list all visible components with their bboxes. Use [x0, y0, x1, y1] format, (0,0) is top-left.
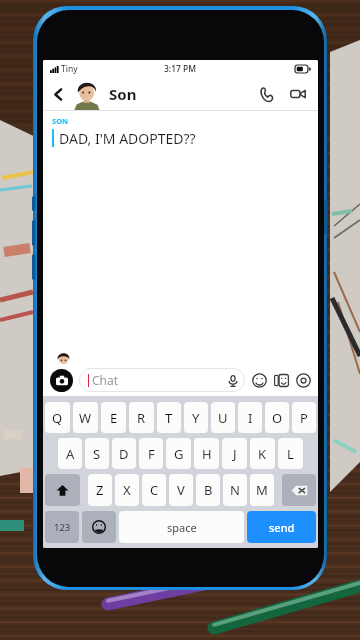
staticText: send	[269, 520, 295, 535]
staticText: SON	[52, 116, 69, 126]
button[interactable]: S	[85, 438, 109, 469]
staticText: U	[218, 409, 228, 427]
button[interactable]: Y	[184, 402, 208, 433]
button[interactable]: C	[142, 474, 166, 506]
button[interactable]: Call	[254, 82, 278, 106]
button[interactable]: Voice message	[224, 372, 241, 389]
staticText: D	[119, 445, 129, 463]
button[interactable]: E	[101, 402, 126, 433]
staticText: Son	[109, 84, 137, 104]
button[interactable]: 123	[45, 511, 79, 543]
staticText: B	[204, 481, 213, 499]
staticText: M	[256, 481, 268, 499]
button[interactable]: W	[73, 402, 98, 433]
staticText: A	[66, 445, 75, 463]
staticText: J	[233, 445, 237, 463]
staticText: L	[287, 445, 294, 463]
button[interactable]: V	[169, 474, 193, 506]
button[interactable]: Backspace	[282, 474, 316, 506]
staticText: S	[93, 445, 101, 463]
staticText: 3:17 PM	[164, 63, 197, 75]
staticText: Chat	[92, 372, 119, 388]
staticText: Z	[96, 481, 104, 499]
staticText: space	[167, 520, 197, 535]
button[interactable]: Back	[48, 84, 68, 104]
button[interactable]: Emoji	[250, 371, 268, 389]
button[interactable]: G	[166, 438, 191, 469]
staticText: K	[258, 445, 267, 463]
staticText: N	[230, 481, 240, 499]
staticText: I	[248, 409, 253, 427]
button[interactable]: L	[278, 438, 303, 469]
button[interactable]: F	[139, 438, 163, 469]
staticText: Tiny	[61, 63, 78, 75]
button[interactable]: Camera	[50, 369, 73, 392]
button[interactable]: Q	[45, 402, 70, 433]
button[interactable]: Chat	[79, 368, 245, 392]
staticText: C	[150, 481, 159, 499]
staticText: O	[272, 409, 283, 427]
button[interactable]: Video call	[286, 82, 310, 106]
staticText: H	[202, 445, 212, 463]
button[interactable]: N	[223, 474, 247, 506]
button[interactable]: P	[292, 402, 316, 433]
button[interactable]: I	[238, 402, 262, 433]
button[interactable]: D	[112, 438, 136, 469]
button[interactable]: K	[250, 438, 275, 469]
staticText: P	[300, 409, 308, 427]
button[interactable]: B	[196, 474, 220, 506]
staticText: V	[177, 481, 185, 499]
button[interactable]: Location	[294, 371, 312, 389]
button[interactable]: A	[58, 438, 82, 469]
staticText: T	[165, 409, 173, 427]
button[interactable]: J	[222, 438, 247, 469]
staticText: W	[79, 409, 92, 427]
staticText: R	[137, 409, 146, 427]
button[interactable]: Stickers	[272, 371, 290, 389]
staticText: G	[174, 445, 184, 463]
button[interactable]: Shift	[45, 474, 80, 506]
button[interactable]: R	[129, 402, 154, 433]
staticText: 123	[54, 521, 71, 534]
button[interactable]: X	[115, 474, 139, 506]
button[interactable]: O	[265, 402, 289, 433]
staticText: X	[123, 481, 131, 499]
button[interactable]: space	[119, 511, 244, 543]
button[interactable]: send	[247, 511, 316, 543]
staticText: Y	[192, 409, 200, 427]
staticText: DAD, I'M ADOPTED??	[59, 129, 196, 148]
button[interactable]: U	[211, 402, 235, 433]
button[interactable]: Z	[88, 474, 112, 506]
staticText: Q	[52, 409, 63, 427]
button[interactable]: M	[250, 474, 274, 506]
staticText: E	[110, 409, 118, 427]
button[interactable]: H	[194, 438, 219, 469]
staticText: F	[148, 445, 155, 463]
button[interactable]: T	[157, 402, 181, 433]
button[interactable]: Emoji keyboard	[82, 511, 116, 543]
